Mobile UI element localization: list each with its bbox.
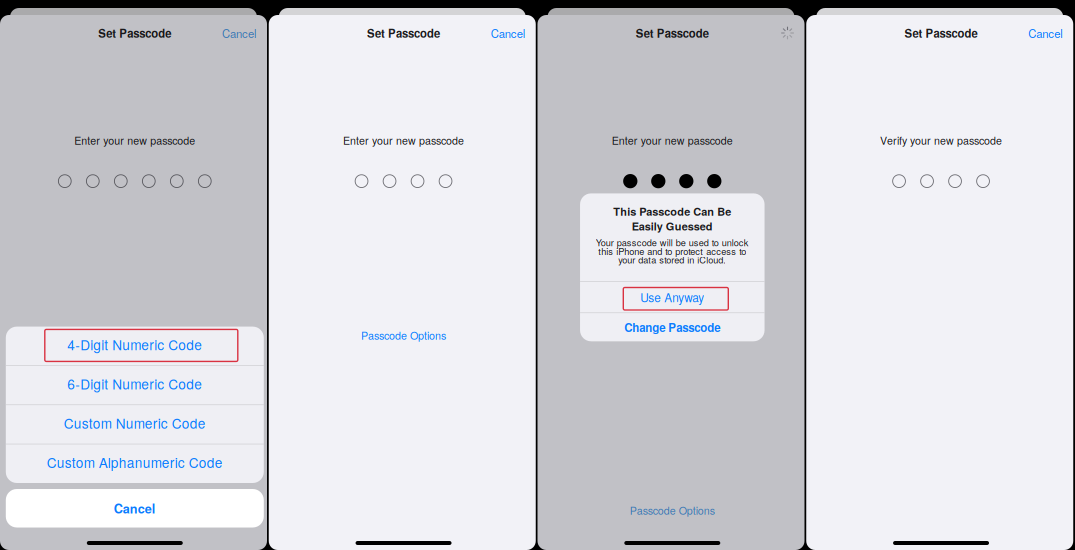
button[interactable]: Cancel [6,489,264,527]
staticText: Set Passcode [98,25,171,41]
staticText: Cancel [114,499,156,517]
staticText: Enter your new passcode [74,132,195,148]
staticText: Passcode Options [630,502,715,518]
button[interactable]: Custom Numeric Code [6,405,264,444]
staticText: Set Passcode [636,25,709,41]
button[interactable]: Cancel [1022,19,1069,47]
staticText: this iPhone and to protect access to [598,244,746,258]
button[interactable]: Cancel [485,19,532,47]
staticText: Your passcode will be used to unlock [596,236,749,249]
button[interactable]: Change Passcode [580,313,764,341]
staticText: Cancel [222,25,257,41]
staticText: Cancel [491,25,526,41]
staticText: Custom Numeric Code [64,413,206,433]
staticText: Change Passcode [624,319,720,335]
staticText: 4-Digit Numeric Code [67,335,202,354]
staticText: Set Passcode [904,25,977,41]
staticText: Use Anyway [640,289,704,306]
button[interactable]: Passcode Options [351,321,456,349]
staticText: Easily Guessed [632,218,713,234]
button[interactable]: Use Anyway [580,282,764,312]
button[interactable]: Cancel [216,19,263,47]
staticText: Enter your new passcode [612,132,733,148]
staticText: This Passcode Can Be [613,204,731,219]
staticText: Verify your new passcode [880,132,1002,148]
staticText: your data stored in iCloud. [618,253,726,266]
staticText: Passcode Options [361,327,446,343]
staticText: 6-Digit Numeric Code [67,374,202,393]
button[interactable]: Custom Alphanumeric Code [6,444,264,483]
staticText: Custom Alphanumeric Code [47,452,223,472]
button[interactable]: 6-Digit Numeric Code [6,366,264,404]
button[interactable]: Loading [775,21,799,45]
button[interactable]: Passcode Options [620,496,725,524]
staticText: Set Passcode [367,25,440,41]
staticText: Enter your new passcode [343,132,464,148]
button[interactable]: 4-Digit Numeric Code [6,327,264,365]
staticText: Cancel [1028,25,1063,41]
